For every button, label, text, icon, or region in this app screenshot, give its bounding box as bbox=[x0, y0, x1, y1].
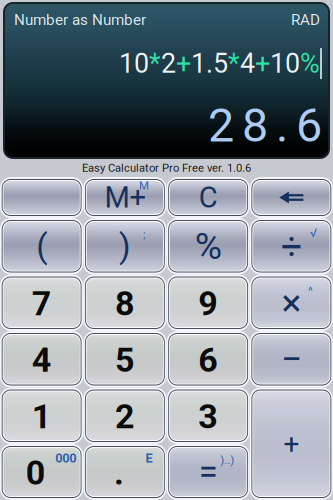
button[interactable]: % bbox=[166, 218, 250, 274]
button[interactable]: − bbox=[250, 331, 333, 387]
staticText: % bbox=[195, 224, 222, 268]
staticText: * bbox=[228, 48, 240, 79]
staticText: 10 bbox=[119, 48, 149, 79]
button[interactable]: 8 bbox=[83, 274, 166, 331]
staticText: M bbox=[139, 179, 149, 192]
staticText: 1 bbox=[32, 397, 52, 437]
staticText: √ bbox=[310, 226, 317, 240]
button[interactable]: ( bbox=[0, 218, 83, 274]
staticText: 10 bbox=[270, 48, 300, 79]
staticText: + bbox=[283, 427, 299, 460]
button[interactable]: 5 bbox=[83, 331, 166, 387]
button[interactable]: 4 bbox=[0, 331, 83, 387]
button[interactable]: ) bbox=[83, 218, 166, 274]
staticText: E bbox=[145, 450, 152, 465]
button[interactable] bbox=[250, 177, 333, 218]
staticText: 5 bbox=[115, 340, 135, 380]
staticText: 7 bbox=[32, 284, 52, 324]
staticText: 6 bbox=[296, 98, 322, 153]
staticText: 0 bbox=[26, 453, 46, 493]
staticText: + bbox=[176, 48, 191, 79]
staticText: 2 bbox=[161, 48, 176, 79]
staticText: ^ bbox=[308, 284, 313, 297]
button[interactable]: M+ bbox=[83, 177, 166, 218]
button[interactable] bbox=[0, 177, 83, 218]
button[interactable]: + bbox=[250, 387, 333, 500]
staticText: 4 bbox=[32, 340, 52, 380]
button[interactable]: C bbox=[166, 177, 250, 218]
staticText: ; bbox=[143, 227, 145, 241]
button[interactable]: 0 bbox=[0, 444, 83, 500]
staticText: 8 bbox=[115, 284, 135, 324]
button[interactable]: = bbox=[166, 444, 250, 500]
staticText: . bbox=[114, 453, 124, 493]
button[interactable]: ÷ bbox=[250, 218, 333, 274]
staticText: = bbox=[199, 452, 218, 492]
staticText: 4 bbox=[240, 48, 255, 79]
staticText: ( bbox=[36, 227, 47, 266]
staticText: M+ bbox=[104, 180, 145, 215]
staticText: + bbox=[255, 48, 270, 79]
staticText: Number as Number bbox=[14, 11, 146, 29]
staticText: 9 bbox=[198, 284, 218, 324]
staticText: ) bbox=[119, 227, 131, 266]
staticText: 000 bbox=[55, 450, 76, 465]
staticText: 2 bbox=[115, 397, 135, 437]
staticText: 2 bbox=[208, 98, 234, 153]
button[interactable]: 1 bbox=[0, 387, 83, 444]
button[interactable]: . bbox=[83, 444, 166, 500]
button[interactable]: 3 bbox=[166, 387, 250, 444]
button[interactable]: 9 bbox=[166, 274, 250, 331]
staticText: )..) bbox=[220, 453, 234, 467]
staticText: Easy Calculator Pro Free ver. 1.0.6 bbox=[82, 161, 251, 174]
staticText: 1.5 bbox=[191, 48, 228, 79]
button[interactable]: 2 bbox=[83, 387, 166, 444]
staticText: 3 bbox=[198, 397, 218, 437]
button[interactable]: 7 bbox=[0, 274, 83, 331]
staticText: ÷ bbox=[281, 224, 302, 268]
staticText: C bbox=[199, 180, 218, 215]
staticText: % bbox=[300, 48, 320, 79]
staticText: × bbox=[281, 281, 301, 325]
staticText: RAD bbox=[291, 11, 320, 29]
staticText: 8 bbox=[242, 98, 268, 153]
button[interactable]: × bbox=[250, 274, 333, 331]
staticText: * bbox=[149, 48, 161, 79]
staticText: 6 bbox=[198, 340, 218, 380]
button[interactable]: 6 bbox=[166, 331, 250, 387]
staticText: − bbox=[281, 337, 302, 381]
staticText: . bbox=[276, 98, 288, 153]
